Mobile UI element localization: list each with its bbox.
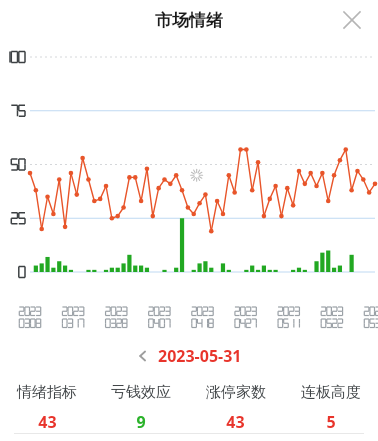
staticText: 2023-05-31 [158,345,242,367]
staticText: 市场情绪 [155,10,223,31]
button[interactable]: Close [334,2,370,38]
button[interactable]: 情绪指标 [0,383,94,433]
other: Previous day [136,349,150,363]
staticText: 5 [326,411,336,433]
button[interactable]: 涨停家数 [188,383,283,433]
staticText: 9 [136,411,146,433]
staticText: 亏钱效应 [111,383,171,402]
staticText: 情绪指标 [17,383,77,402]
button[interactable]: Previous day [126,341,252,371]
staticText: 连板高度 [301,383,361,402]
staticText: 43 [226,411,245,433]
button[interactable]: 连板高度 [283,383,378,433]
staticText: 43 [38,411,57,433]
button[interactable]: 亏钱效应 [94,383,188,433]
staticText: 涨停家数 [206,383,266,402]
